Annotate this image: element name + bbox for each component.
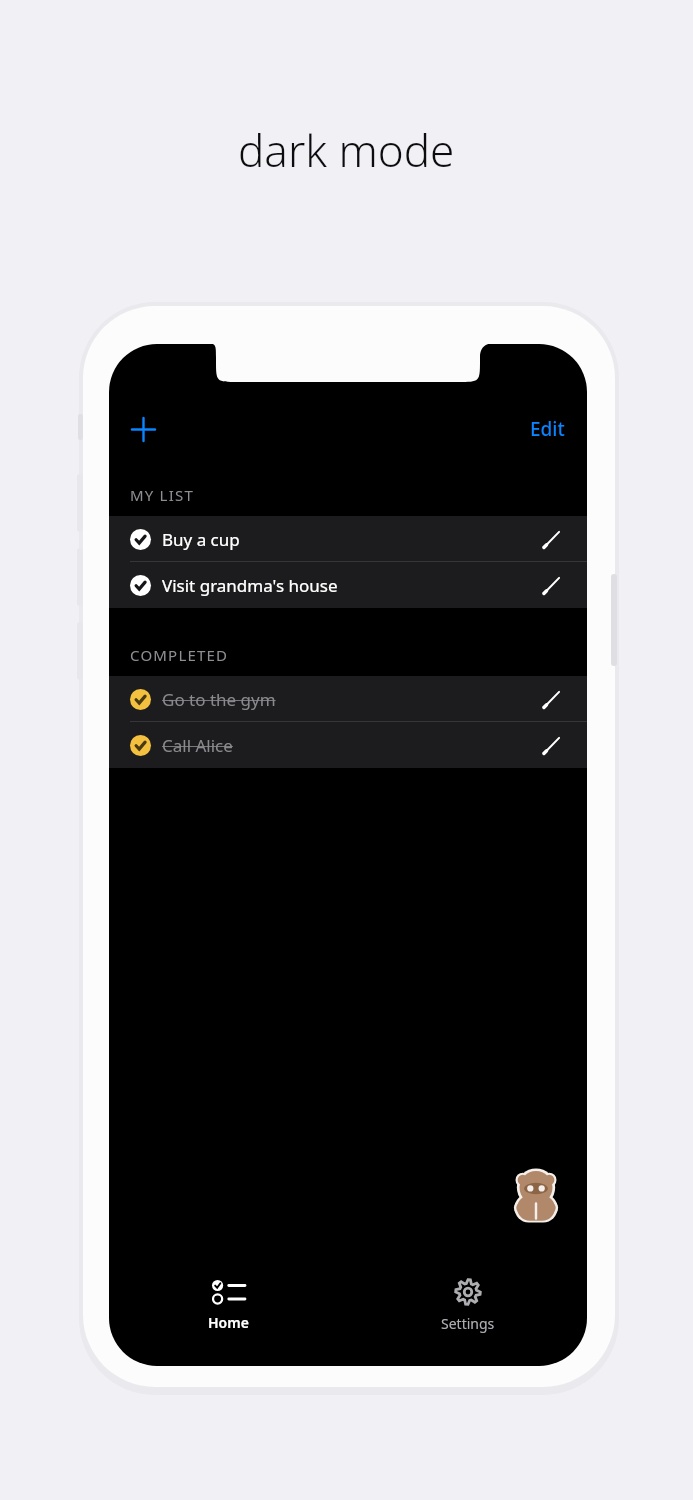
- staticText: COMPLETED: [130, 645, 229, 665]
- staticText: dark mode: [238, 120, 455, 180]
- staticText: Home: [208, 1313, 249, 1332]
- button[interactable]: Edit Call Alice: [535, 729, 567, 761]
- button[interactable]: Settings: [348, 1260, 587, 1350]
- button[interactable]: Edit Go to the gym: [535, 683, 567, 715]
- staticText: Buy a cup: [162, 528, 240, 551]
- staticText: MY LIST: [130, 485, 194, 505]
- button[interactable]: Home: [109, 1260, 348, 1350]
- button[interactable]: Edit Buy a cup: [535, 523, 567, 555]
- button[interactable]: Edit: [520, 408, 575, 450]
- staticText: Go to the gym: [162, 688, 276, 711]
- button[interactable]: Visit grandma's house: [109, 562, 587, 608]
- button[interactable]: Add item: [121, 407, 165, 451]
- staticText: Visit grandma's house: [162, 574, 338, 597]
- staticText: Call Alice: [162, 734, 233, 757]
- staticText: Settings: [441, 1314, 495, 1333]
- button[interactable]: Call Alice: [109, 722, 587, 768]
- button[interactable]: Edit Visit grandma's house: [535, 569, 567, 601]
- button[interactable]: Buy a cup: [109, 516, 587, 562]
- button[interactable]: Go to the gym: [109, 676, 587, 722]
- staticText: Edit: [530, 416, 565, 442]
